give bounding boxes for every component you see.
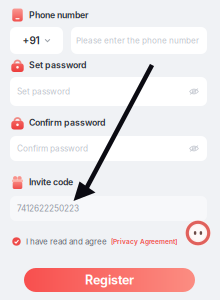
staticText: Please enter the phone number bbox=[76, 36, 199, 45]
staticText: [Privacy Agreement] bbox=[111, 237, 177, 245]
staticText: 7412622250223 bbox=[17, 203, 79, 213]
button[interactable]: 7412622250223 bbox=[10, 196, 207, 221]
button[interactable]: [Privacy Agreement] bbox=[107, 237, 177, 245]
staticText: +91 bbox=[22, 34, 39, 47]
staticText: Invite code bbox=[29, 177, 73, 187]
button[interactable]: Confirm password bbox=[10, 136, 207, 161]
staticText: Confirm password bbox=[17, 143, 88, 153]
button[interactable]: Register bbox=[24, 268, 195, 292]
button[interactable]: Set password bbox=[10, 77, 207, 106]
button[interactable]: Customer support bbox=[185, 220, 211, 246]
button[interactable]: Please enter the phone number bbox=[71, 27, 207, 54]
button[interactable]: Accept agreement bbox=[12, 236, 21, 247]
staticText: Set password bbox=[17, 86, 70, 96]
staticText: Confirm password bbox=[29, 117, 105, 128]
staticText: I have read and agree bbox=[26, 237, 107, 246]
staticText: Set password bbox=[29, 60, 86, 70]
staticText: Phone number bbox=[29, 10, 88, 20]
staticText: Register bbox=[85, 272, 134, 288]
button[interactable]: +91 bbox=[10, 27, 63, 54]
